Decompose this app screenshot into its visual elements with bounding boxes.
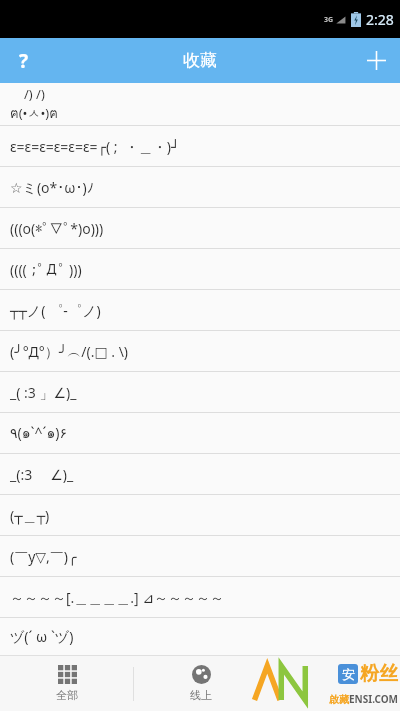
- button[interactable]: ٩(๑`^´๑)۶: [0, 413, 400, 453]
- button[interactable]: 线上: [134, 656, 267, 711]
- button[interactable]: (((( ;ﾟДﾟ ))): [0, 249, 400, 289]
- staticText: ヅ(´ ω `ヅ): [10, 627, 74, 646]
- staticText: 2:28: [366, 10, 394, 29]
- staticText: (((( ;ﾟДﾟ ))): [10, 260, 82, 279]
- button[interactable]: Help: [0, 38, 48, 83]
- button[interactable]: 全部: [0, 656, 133, 711]
- staticText: ENSI.COM: [349, 692, 398, 706]
- staticText: _(:3 ゝ∠)_: [10, 465, 74, 484]
- button[interactable]: ヅ(´ ω `ヅ): [0, 618, 400, 655]
- staticText: (￣y▽,￣)╭: [10, 547, 77, 566]
- staticText: 全部: [56, 688, 78, 702]
- staticText: ☆ミ(o*･ω･)ﾉ: [10, 178, 94, 197]
- button[interactable]: ε=ε=ε=ε=ε=ε=┌( ; ・＿・)┘: [0, 126, 400, 166]
- staticText: /) /): [24, 85, 45, 103]
- staticText: ?: [19, 48, 29, 74]
- staticText: _( :3 」∠)_: [10, 383, 77, 402]
- staticText: ٩(๑`^´๑)۶: [10, 422, 68, 444]
- button[interactable]: (┬＿┬): [0, 495, 400, 535]
- button[interactable]: _( :3 」∠)_: [0, 372, 400, 412]
- staticText: 粉丝: [360, 662, 398, 686]
- staticText: ～～～～[.＿＿＿＿.] ⊿～～～～～: [10, 588, 225, 607]
- button[interactable]: ☆ミ(o*･ω･)ﾉ: [0, 167, 400, 207]
- button[interactable]: ～～～～[.＿＿＿＿.] ⊿～～～～～: [0, 577, 400, 617]
- staticText: (┬＿┬): [10, 506, 50, 525]
- staticText: (╯°Д°）╯︵/(.□ . \): [10, 342, 129, 361]
- button[interactable]: (╯°Д°）╯︵/(.□ . \): [0, 331, 400, 371]
- button[interactable]: /) /): [0, 83, 400, 125]
- staticText: (((o(*ﾟ▽ﾟ*)o))): [10, 219, 104, 238]
- button[interactable]: _(:3 ゝ∠)_: [0, 454, 400, 494]
- button[interactable]: Add: [352, 38, 400, 83]
- staticText: ┬┬﻿ノ( ゜-゜ノ): [10, 301, 101, 320]
- button[interactable]: (((o(*ﾟ▽ﾟ*)o))): [0, 208, 400, 248]
- staticText: ฅ(•ㅅ•)ฅ: [10, 103, 58, 124]
- button[interactable]: ┬┬﻿ノ( ゜-゜ノ): [0, 290, 400, 330]
- staticText: 3G: [324, 15, 334, 25]
- staticText: 安: [342, 666, 355, 682]
- staticText: 收藏: [183, 50, 217, 71]
- button[interactable]: (￣y▽,￣)╭: [0, 536, 400, 576]
- staticText: 啟藏: [329, 693, 349, 706]
- staticText: ε=ε=ε=ε=ε=ε=┌( ; ・＿・)┘: [10, 137, 180, 156]
- staticText: 线上: [190, 688, 212, 702]
